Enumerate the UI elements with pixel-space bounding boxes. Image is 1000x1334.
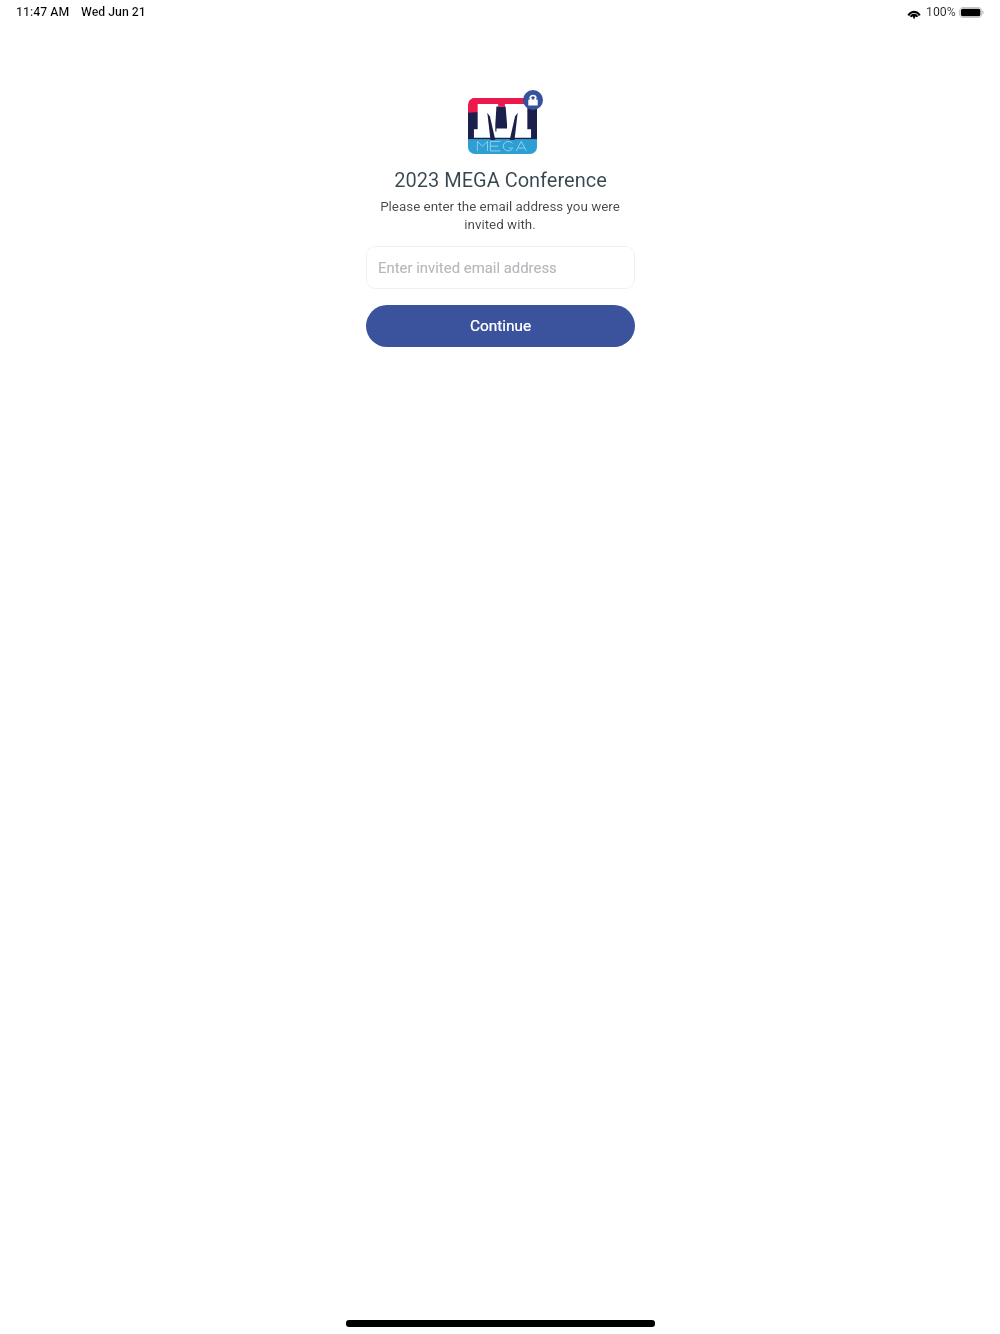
staticText: Wed Jun 21 [81,5,146,19]
button[interactable]: Continue [366,305,635,347]
button[interactable]: Enter invited email address [366,246,635,289]
staticText: 2023 MEGA Conference [394,168,607,191]
staticText: Please enter the email address you were … [372,199,628,233]
other: Wi-Fi [907,7,921,18]
other: Battery full [959,7,984,18]
staticText: 100% [926,5,956,19]
staticText: Enter invited email address [378,259,557,276]
other: Secure [523,90,543,110]
staticText: Continue [470,317,532,335]
staticText: 11:47 AM [16,5,70,19]
